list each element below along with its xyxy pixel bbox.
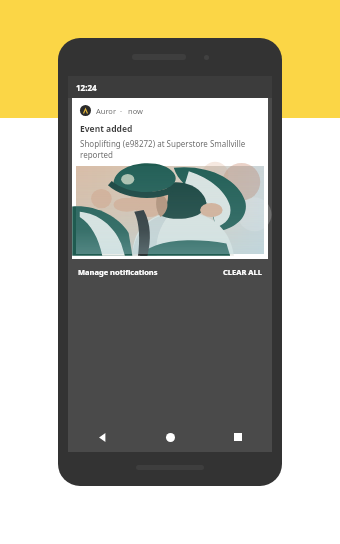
button[interactable]: Home — [136, 422, 204, 452]
staticText: Shoplifting (e98272) at Superstore Small… — [80, 138, 262, 160]
staticText: Manage notifications — [78, 267, 158, 277]
button[interactable]: Auror — [72, 98, 268, 259]
button[interactable]: Recent apps — [204, 422, 272, 452]
button[interactable]: Back — [68, 422, 136, 452]
staticText: 12:24 — [76, 82, 97, 93]
staticText: CLEAR ALL — [223, 267, 262, 277]
button[interactable]: CLEAR ALL — [221, 263, 264, 281]
staticText: · — [120, 106, 123, 116]
staticText: now — [128, 106, 143, 116]
staticText: Event added — [80, 123, 133, 135]
staticText: Auror — [96, 106, 117, 116]
button[interactable]: Manage notifications — [76, 263, 160, 281]
